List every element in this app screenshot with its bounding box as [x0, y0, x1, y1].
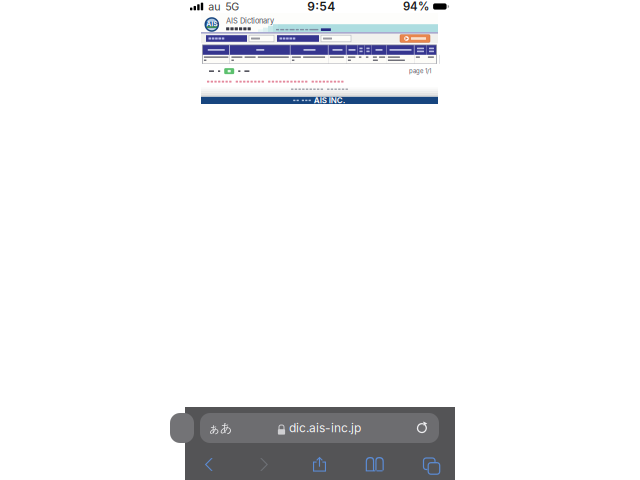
button[interactable]: ぁあ — [200, 413, 439, 443]
staticText: 94% — [403, 0, 429, 13]
staticText: 9:54 — [307, 0, 335, 14]
staticText: AIS — [206, 20, 217, 28]
staticText: ぁあ — [208, 420, 232, 435]
button[interactable]: Tabs — [410, 449, 450, 479]
staticText: AIS INC. — [314, 96, 346, 105]
button[interactable]: Back — [189, 449, 229, 479]
staticText: 5G — [225, 0, 239, 13]
staticText: AIS Dictionary — [226, 16, 274, 25]
staticText: au — [208, 0, 220, 13]
button[interactable]: Share — [299, 449, 339, 479]
staticText: page 1/1 — [409, 67, 431, 75]
button[interactable]: Forward — [244, 449, 284, 479]
button[interactable]: Bookmarks — [355, 449, 395, 479]
staticText: dic.ais-inc.jp — [289, 421, 361, 435]
